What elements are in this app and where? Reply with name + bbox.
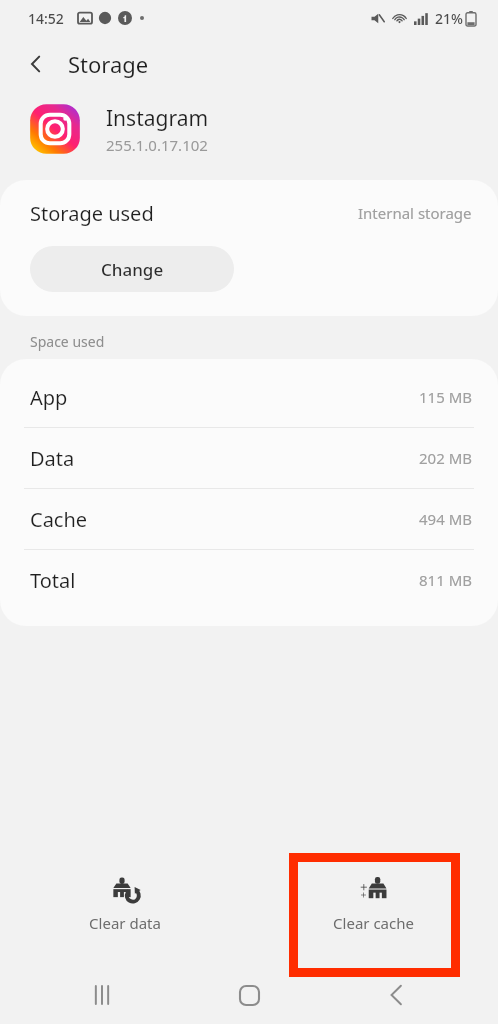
staticText: Internal storage xyxy=(358,203,472,223)
button[interactable]: Clear cache xyxy=(249,841,498,965)
staticText: 21% xyxy=(435,9,463,28)
button[interactable]: Data xyxy=(0,428,498,489)
staticText: App xyxy=(30,384,68,411)
staticText: Cache xyxy=(30,506,88,533)
button[interactable]: Back xyxy=(372,971,420,1019)
staticText: Total xyxy=(30,567,76,594)
button[interactable]: Cache xyxy=(0,489,498,550)
staticText: 115 MB xyxy=(419,387,472,407)
staticText: 202 MB xyxy=(419,448,472,468)
button[interactable]: App xyxy=(0,367,498,428)
staticText: Space used xyxy=(30,332,105,351)
button[interactable]: Change xyxy=(30,246,234,292)
staticText: 255.1.0.17.102 xyxy=(106,135,208,155)
button[interactable]: Total xyxy=(0,550,498,610)
staticText: Storage used xyxy=(30,200,154,227)
button[interactable]: Back xyxy=(16,44,56,84)
staticText: Change xyxy=(101,258,164,281)
staticText: Clear cache xyxy=(333,913,414,933)
staticText: Storage xyxy=(68,49,149,79)
button[interactable]: Recents xyxy=(78,971,126,1019)
staticText: Data xyxy=(30,445,75,472)
staticText: Clear data xyxy=(89,913,161,933)
button[interactable]: Clear data xyxy=(0,841,249,965)
staticText: Instagram xyxy=(106,104,209,133)
staticText: 14:52 xyxy=(28,9,64,28)
staticText: 811 MB xyxy=(419,570,472,590)
button[interactable]: Home xyxy=(225,971,273,1019)
staticText: 494 MB xyxy=(419,509,472,529)
